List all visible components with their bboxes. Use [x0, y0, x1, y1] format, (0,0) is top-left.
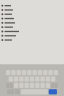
- button[interactable]: Key: [9, 76, 13, 82]
- button[interactable]: [0, 3, 64, 8]
- button[interactable]: [0, 38, 64, 42]
- button[interactable]: [0, 25, 64, 29]
- button[interactable]: Key: [40, 76, 45, 82]
- button[interactable]: [0, 21, 64, 25]
- button[interactable]: Key: [14, 76, 18, 82]
- button[interactable]: Key: [35, 76, 39, 82]
- button[interactable]: [0, 12, 64, 16]
- button[interactable]: [0, 16, 64, 21]
- button[interactable]: [0, 29, 64, 34]
- button[interactable]: Key: [35, 83, 39, 88]
- button[interactable]: [0, 34, 64, 38]
- button[interactable]: Key: [24, 76, 29, 82]
- button[interactable]: Key: [19, 76, 24, 82]
- button[interactable]: Key: [48, 70, 53, 75]
- button[interactable]: Key: [11, 70, 16, 75]
- button[interactable]: Key: [40, 83, 45, 88]
- button[interactable]: Key: [24, 83, 29, 88]
- button[interactable]: Key: [30, 76, 34, 82]
- button[interactable]: Key: [51, 76, 55, 82]
- button[interactable]: Key: [27, 70, 32, 75]
- button[interactable]: Key: [32, 70, 37, 75]
- button[interactable]: Key: [19, 83, 24, 88]
- button[interactable]: [0, 8, 64, 12]
- button[interactable]: Search: [49, 89, 57, 94]
- button[interactable]: Key: [46, 76, 50, 82]
